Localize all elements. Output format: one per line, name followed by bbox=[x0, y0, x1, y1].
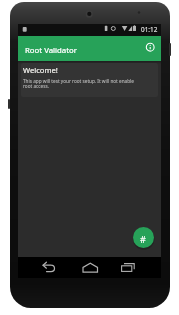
staticText: 01:12 bbox=[141, 25, 158, 34]
button[interactable]: # bbox=[133, 227, 154, 248]
button[interactable] bbox=[41, 260, 59, 275]
button[interactable] bbox=[142, 39, 158, 55]
staticText: # bbox=[140, 233, 146, 245]
button[interactable]: Root Validator bbox=[18, 36, 161, 62]
staticText: This app will test your root setup. It w… bbox=[23, 78, 134, 90]
staticText: Root Validator bbox=[25, 45, 77, 56]
button[interactable]: Welcome! bbox=[21, 63, 158, 97]
button[interactable] bbox=[119, 260, 137, 275]
staticText: Welcome! bbox=[23, 65, 58, 75]
button[interactable] bbox=[81, 260, 99, 275]
